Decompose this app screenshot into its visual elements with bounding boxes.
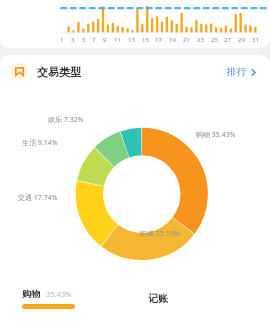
- staticText: 生活 9.14%: [22, 138, 58, 148]
- staticText: 7: [92, 36, 96, 44]
- staticText: 11: [114, 36, 121, 44]
- staticText: 13: [128, 36, 135, 44]
- staticText: 15: [142, 36, 149, 44]
- staticText: 记账: [148, 292, 168, 305]
- staticText: 29: [238, 36, 245, 44]
- staticText: 19: [169, 36, 176, 44]
- staticText: 交通 17.74%: [18, 193, 58, 203]
- staticText: 娱乐 7.32%: [48, 115, 84, 125]
- staticText: 排行: [227, 66, 246, 78]
- staticText: 吃喝 25.15%: [140, 229, 180, 239]
- staticText: 9: [103, 36, 107, 44]
- staticText: 1: [60, 36, 64, 44]
- staticText: 3: [71, 36, 75, 44]
- staticText: 23: [197, 36, 204, 44]
- staticText: 21: [183, 36, 190, 44]
- staticText: 35.43%: [46, 289, 72, 299]
- staticText: 5: [82, 36, 86, 44]
- staticText: 27: [224, 36, 231, 44]
- staticText: 购物 35.43%: [196, 130, 236, 140]
- staticText: 交易类型: [37, 65, 81, 79]
- staticText: 购物: [22, 288, 40, 299]
- button[interactable]: 排行: [225, 61, 259, 83]
- staticText: 17: [155, 36, 162, 44]
- button[interactable]: 记账: [115, 283, 201, 313]
- staticText: 31: [252, 36, 259, 44]
- staticText: 25: [211, 36, 218, 44]
